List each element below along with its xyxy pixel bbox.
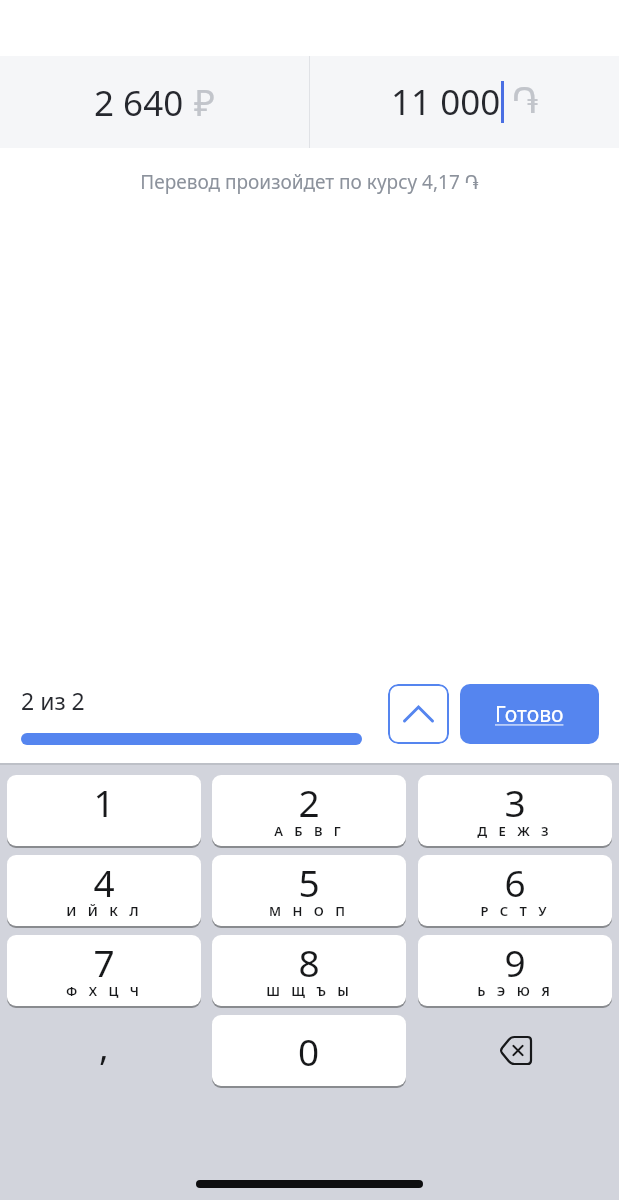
button[interactable]: 4	[7, 855, 201, 926]
staticText: 2 из 2	[21, 685, 85, 716]
staticText: 5	[298, 857, 320, 907]
staticText: Р С Т У	[480, 902, 551, 920]
staticText: ֏	[512, 84, 539, 120]
staticText: 11 000	[391, 78, 501, 126]
staticText: Перевод произойдет по курсу 4,17 ֏	[0, 169, 619, 195]
button[interactable]: 5	[212, 855, 406, 926]
staticText: 3	[504, 777, 526, 827]
staticText: Ф Х Ц Ч	[66, 982, 143, 1000]
staticText: 7	[93, 937, 115, 987]
button[interactable]: 2	[212, 775, 406, 846]
button[interactable]: 3	[418, 775, 612, 846]
staticText: Д Е Ж З	[477, 822, 553, 840]
staticText: М Н О П	[269, 902, 349, 920]
button[interactable]: 11 000	[310, 56, 619, 148]
staticText: Ш Щ Ъ Ы	[266, 982, 353, 1000]
staticText: Ь Э Ю Я	[477, 982, 554, 1000]
staticText: 0	[298, 1026, 320, 1076]
staticText: ₽	[194, 78, 215, 127]
button[interactable]: 1	[7, 775, 201, 846]
button[interactable]: 8	[212, 935, 406, 1006]
staticText: 1	[93, 777, 115, 827]
staticText: ,	[99, 1022, 109, 1071]
button[interactable]: 0	[212, 1015, 406, 1086]
staticText: 8	[298, 937, 320, 987]
button[interactable]: Готово	[460, 684, 599, 744]
button[interactable]: ,	[7, 1015, 201, 1086]
staticText: 2 640	[94, 79, 184, 127]
staticText: 2	[298, 777, 320, 827]
staticText: Готово	[495, 700, 564, 729]
button[interactable]: 6	[418, 855, 612, 926]
button[interactable]: 7	[7, 935, 201, 1006]
staticText: 4	[93, 857, 115, 907]
button[interactable]: 9	[418, 935, 612, 1006]
button[interactable]	[388, 684, 449, 744]
button[interactable]: 2 640	[0, 56, 309, 148]
button[interactable]	[418, 1015, 612, 1086]
staticText: 9	[504, 937, 526, 987]
staticText: И Й К Л	[66, 902, 143, 920]
staticText: А Б В Г	[274, 822, 345, 840]
staticText: 6	[504, 857, 526, 907]
